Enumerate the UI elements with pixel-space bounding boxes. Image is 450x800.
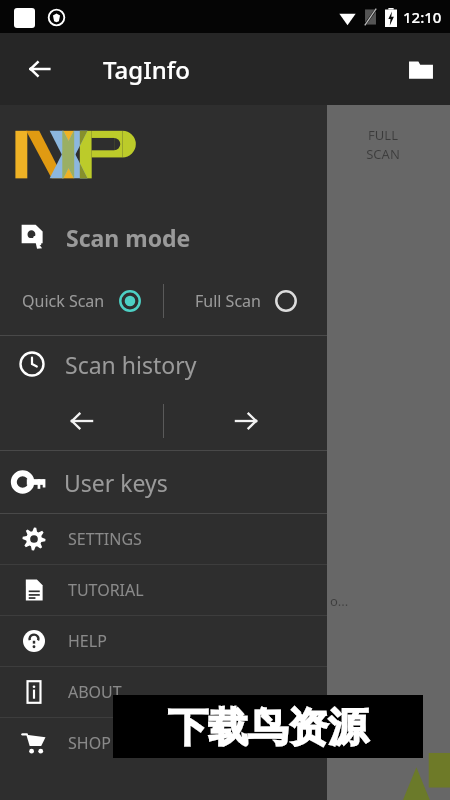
button[interactable]: TUTORIAL <box>0 565 327 615</box>
button[interactable]: SHOP <box>0 718 327 768</box>
staticText: TUTORIAL <box>68 579 144 601</box>
staticText: HELP <box>68 630 107 652</box>
button[interactable]: Next scan <box>164 392 327 450</box>
button[interactable]: Quick Scan <box>0 279 163 323</box>
button[interactable]: Scan mode <box>0 211 327 263</box>
button[interactable]: ABOUT <box>0 667 327 717</box>
staticText: 下载鸟资源 <box>168 702 368 752</box>
staticText: o... <box>330 592 349 610</box>
staticText: 12:10 <box>403 7 442 27</box>
staticText: User keys <box>64 467 168 498</box>
button[interactable]: Back <box>12 33 68 105</box>
button[interactable]: Open folder <box>392 33 450 105</box>
staticText: SETTINGS <box>68 528 142 550</box>
button[interactable]: User keys <box>0 451 327 513</box>
staticText: SHOP <box>68 732 111 754</box>
staticText: Scan history <box>65 349 197 380</box>
button[interactable]: HELP <box>0 616 327 666</box>
staticText: Scan mode <box>66 222 191 253</box>
staticText: Quick Scan <box>22 290 105 312</box>
staticText: FULL SCAN <box>366 126 400 163</box>
button[interactable]: SETTINGS <box>0 514 327 564</box>
staticText: ABOUT <box>68 681 122 703</box>
staticText: Full Scan <box>195 290 261 312</box>
button[interactable]: Full Scan <box>164 279 327 323</box>
button[interactable]: Scan history <box>0 336 327 392</box>
button[interactable]: Previous scan <box>0 392 163 450</box>
staticText: TagInfo <box>103 53 190 86</box>
